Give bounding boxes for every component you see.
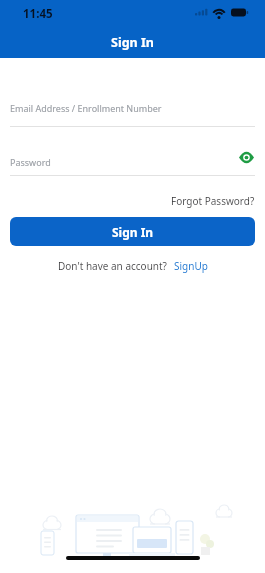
- staticText: Password: [10, 156, 51, 168]
- staticText: Don't have an account?: [58, 259, 167, 273]
- staticText: 11:45: [23, 6, 53, 22]
- staticText: Sign In: [111, 34, 154, 51]
- staticText: Forgot Password?: [171, 194, 255, 208]
- staticText: Email Address / Enrollment Number: [10, 102, 162, 114]
- staticText: Sign In: [112, 224, 154, 240]
- staticText: SignUp: [174, 259, 208, 273]
